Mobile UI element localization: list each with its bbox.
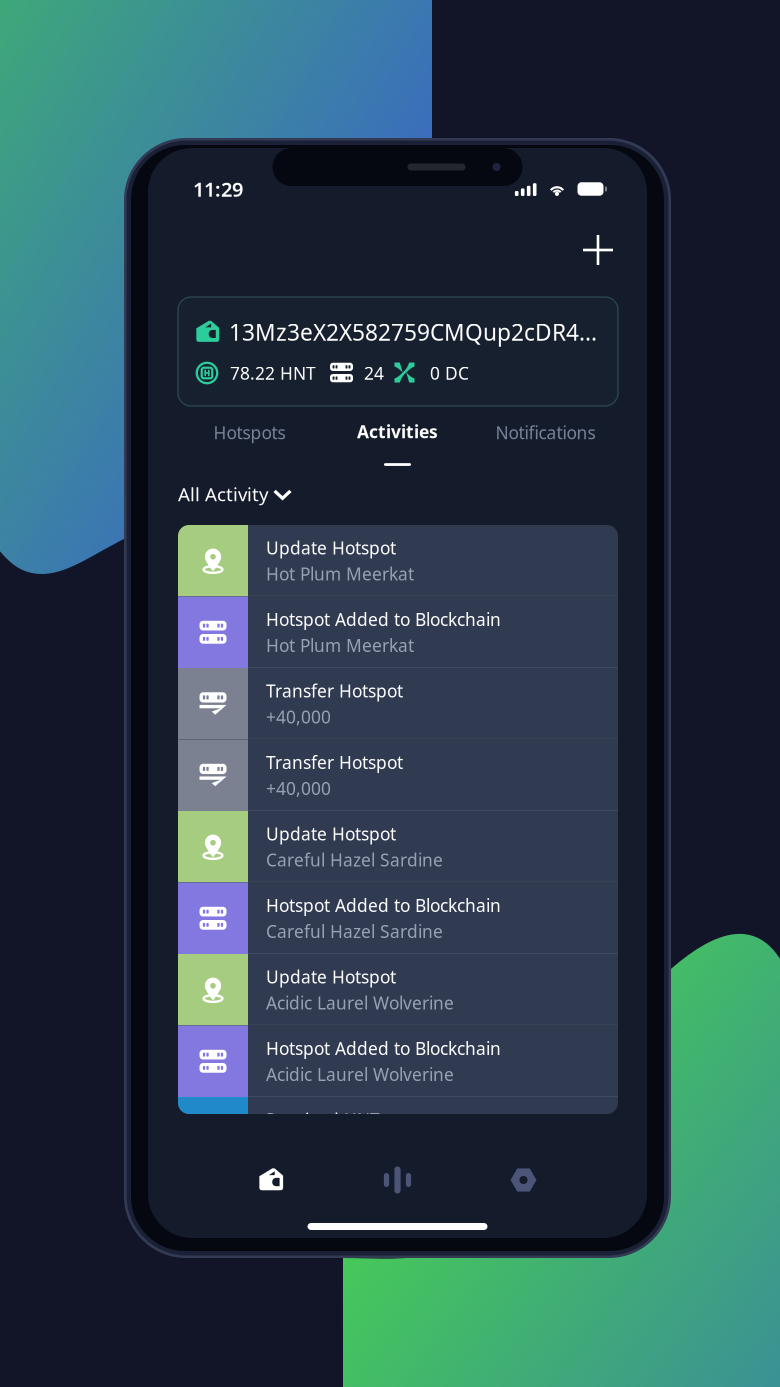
staticText: Notifications xyxy=(495,421,595,444)
staticText: Received HNT xyxy=(266,1108,380,1131)
staticText: Careful Hazel Sardine xyxy=(266,848,443,871)
button[interactable]: Update Hotspot xyxy=(178,811,618,882)
staticText: Hotspot Added to Blockchain xyxy=(266,894,501,917)
button[interactable]: Received HNT xyxy=(178,1097,618,1168)
staticText: Hotspot Added to Blockchain xyxy=(266,1037,501,1060)
staticText: +40,000 xyxy=(266,777,331,800)
staticText: Hotspot Added to Blockchain xyxy=(266,608,501,631)
button[interactable]: Update Hotspot xyxy=(178,954,618,1025)
button[interactable]: Transfer Hotspot xyxy=(178,739,618,811)
button[interactable]: Activities xyxy=(323,417,471,465)
staticText: Transfer Hotspot xyxy=(266,751,403,774)
button[interactable]: Hotspot Added to Blockchain xyxy=(178,596,618,668)
staticText: Hot Plum Meerkat xyxy=(266,634,414,657)
staticText: 78.22 HNT xyxy=(230,361,316,384)
staticText: Hot Plum Meerkat xyxy=(266,562,414,585)
staticText: Update Hotspot xyxy=(266,536,396,559)
staticText: Acidic Laurel Wolverine xyxy=(266,991,454,1014)
button[interactable]: Settings xyxy=(493,1155,553,1205)
button[interactable]: Hotspots xyxy=(367,1155,427,1205)
staticText: Update Hotspot xyxy=(266,965,396,988)
button[interactable]: All Activity xyxy=(178,483,308,505)
staticText: 0 DC xyxy=(430,361,469,384)
staticText: Acidic Laurel Wolverine xyxy=(266,1063,454,1086)
button[interactable]: Transfer Hotspot xyxy=(178,668,618,739)
staticText: Hotspots xyxy=(213,421,285,444)
button[interactable]: Wallet xyxy=(241,1155,301,1205)
button[interactable]: Hotspots xyxy=(175,417,323,465)
button[interactable]: Add xyxy=(572,224,624,276)
staticText: 24 xyxy=(364,361,384,384)
staticText: All Activity xyxy=(178,482,269,506)
button[interactable]: Hotspot Added to Blockchain xyxy=(178,1025,618,1097)
button[interactable]: Hotspot Added to Blockchain xyxy=(178,882,618,954)
staticText: Transfer Hotspot xyxy=(266,679,403,702)
staticText: +40,000 xyxy=(266,705,331,728)
staticText: 11:29 xyxy=(193,176,243,202)
button[interactable]: Update Hotspot xyxy=(178,525,618,596)
button[interactable]: Notifications xyxy=(471,417,619,465)
staticText: Careful Hazel Sardine xyxy=(266,920,443,943)
staticText: Update Hotspot xyxy=(266,822,396,845)
staticText: 13Mz3eX2X582759CMQup2cDR4... xyxy=(229,317,597,347)
staticText: Activities xyxy=(357,420,438,443)
